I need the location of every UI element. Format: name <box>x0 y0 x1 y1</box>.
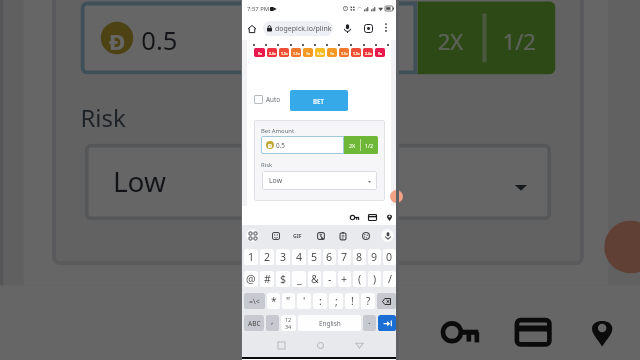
staticText: 0 <box>386 250 393 264</box>
button[interactable]: : <box>313 293 327 309</box>
button[interactable]: Keyboard tool <box>291 229 304 242</box>
button[interactable]: _ <box>292 271 306 287</box>
button[interactable]: ( <box>353 271 366 287</box>
button[interactable]: $ <box>276 271 290 287</box>
button[interactable]: . <box>363 315 376 331</box>
staticText: =\< <box>249 296 260 306</box>
button[interactable]: 1.1x <box>339 48 349 57</box>
button[interactable]: Payment cards <box>507 306 560 359</box>
button[interactable]: 2 <box>260 249 274 265</box>
staticText: $ <box>280 272 287 286</box>
staticText: Low <box>269 176 283 185</box>
button[interactable]: Passwords <box>434 306 486 359</box>
button[interactable]: BET <box>290 90 348 111</box>
button[interactable]: ' <box>297 293 311 309</box>
staticText: 2 <box>264 250 271 264</box>
button[interactable]: Low <box>84 143 551 221</box>
button[interactable]: 12 <box>281 315 296 331</box>
staticText: 1.1x <box>293 51 300 55</box>
button[interactable]: ? <box>361 293 375 309</box>
staticText: 1x <box>306 51 310 55</box>
button[interactable]: 1/2 <box>361 136 378 154</box>
button[interactable]: ; <box>329 293 343 309</box>
button[interactable]: Backspace <box>377 293 396 309</box>
button[interactable]: 1.3x <box>351 48 361 57</box>
button[interactable]: ) <box>368 271 381 287</box>
button[interactable]: Keyboard tool <box>269 229 282 242</box>
button[interactable]: 1 <box>244 249 258 265</box>
button[interactable]: Passwords <box>348 211 361 224</box>
button[interactable]: 2.4x <box>267 48 277 57</box>
button[interactable]: * <box>267 293 280 309</box>
button[interactable]: 1.1x <box>291 48 301 57</box>
staticText: + <box>341 272 348 286</box>
button[interactable]: 1.3x <box>279 48 289 57</box>
button[interactable]: More options <box>381 22 391 32</box>
staticText: Ð <box>268 142 273 149</box>
staticText: 9 <box>371 250 378 264</box>
button[interactable]: Voice search <box>341 22 354 35</box>
button[interactable]: =\< <box>244 293 265 309</box>
button[interactable]: 8 <box>353 249 366 265</box>
staticText: , <box>271 315 274 326</box>
staticText: Ð <box>109 26 129 54</box>
staticText: _ <box>297 272 302 286</box>
button[interactable]: Ð <box>80 1 417 74</box>
button[interactable]: Back <box>351 337 367 353</box>
button[interactable]: 7 <box>338 249 351 265</box>
button[interactable]: ABC <box>244 315 264 331</box>
staticText: 9x <box>378 51 382 55</box>
button[interactable]: English <box>298 315 361 331</box>
staticText: 1.3x <box>281 51 288 55</box>
button[interactable]: 0 <box>383 249 396 265</box>
staticText: ; <box>335 294 338 308</box>
button[interactable]: 0.5x <box>315 48 325 57</box>
button[interactable]: ! <box>345 293 359 309</box>
button[interactable]: + <box>338 271 351 287</box>
button[interactable]: 9x <box>254 48 265 57</box>
button[interactable]: Keyboard tool <box>381 229 394 242</box>
button[interactable]: 2.4x <box>363 48 373 57</box>
button[interactable]: Home <box>245 22 259 36</box>
button[interactable]: 9 <box>368 249 381 265</box>
button[interactable]: 2X <box>417 1 482 74</box>
button[interactable]: Recents <box>273 337 289 353</box>
button[interactable]: Chat <box>390 190 403 203</box>
staticText: 2.4x <box>269 51 276 55</box>
button[interactable]: 9x <box>375 48 385 57</box>
button[interactable]: 3 <box>276 249 290 265</box>
staticText: English <box>319 319 341 328</box>
button[interactable]: 5 <box>308 249 321 265</box>
button[interactable]: Keyboard tool <box>336 229 349 242</box>
button[interactable]: Keyboard tool <box>246 229 259 242</box>
button[interactable]: Enter <box>378 315 396 331</box>
button[interactable]: Payment cards <box>366 211 379 224</box>
button[interactable]: / <box>383 271 396 287</box>
button[interactable]: 4 <box>292 249 306 265</box>
button[interactable]: Ð <box>261 136 344 154</box>
button[interactable]: 1x <box>303 48 313 57</box>
button[interactable]: Home <box>312 337 328 353</box>
button[interactable]: Auto <box>254 95 280 104</box>
button[interactable]: " <box>282 293 295 309</box>
button[interactable]: - <box>323 271 336 287</box>
button[interactable]: dogepick.io/plink <box>263 21 333 36</box>
button[interactable]: @ <box>244 271 258 287</box>
button[interactable]: 2X <box>344 136 360 154</box>
button[interactable]: Search with camera <box>362 22 375 35</box>
button[interactable]: 1x <box>327 48 337 57</box>
button[interactable]: 1/2 <box>486 1 555 74</box>
button[interactable]: & <box>308 271 321 287</box>
button[interactable]: Low <box>262 171 377 190</box>
staticText: 2X <box>349 142 356 149</box>
button[interactable]: Keyboard tool <box>359 229 372 242</box>
button[interactable]: Keyboard tool <box>314 229 327 242</box>
button[interactable]: , <box>266 315 279 331</box>
staticText: 9x <box>258 51 262 55</box>
button[interactable]: Chat <box>604 221 640 273</box>
staticText: @ <box>246 272 256 286</box>
button[interactable]: 6 <box>323 249 336 265</box>
button[interactable]: # <box>260 271 274 287</box>
button[interactable]: Addresses <box>383 211 396 224</box>
button[interactable]: Addresses <box>576 306 629 359</box>
